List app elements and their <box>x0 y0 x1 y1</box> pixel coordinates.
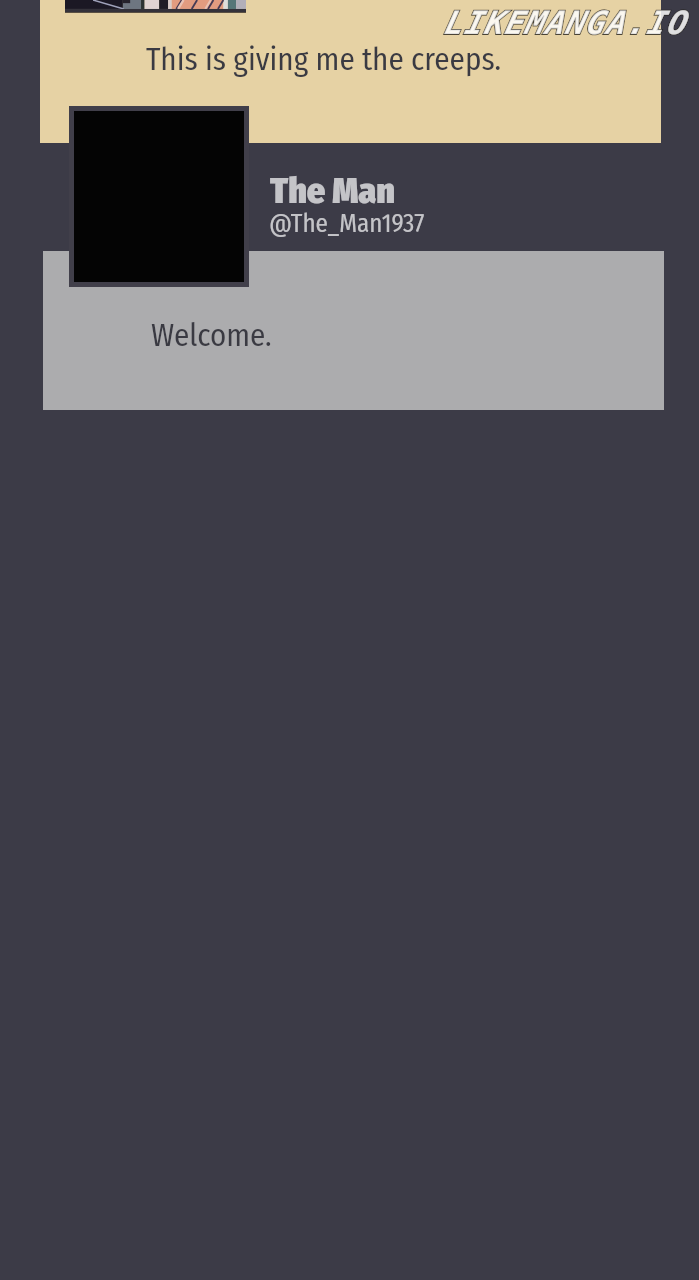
staticText: The Man <box>270 169 396 212</box>
staticText: LIKEMANGA.IO <box>443 4 687 41</box>
button[interactable]: Manga page panel <box>43 251 664 410</box>
staticText: LIKEMANGA.IO <box>443 4 687 41</box>
staticText: @The_Man1937 <box>269 209 425 239</box>
staticText: This is giving me the creeps. <box>146 41 502 78</box>
staticText: Welcome. <box>151 317 272 354</box>
button[interactable]: The Man <box>266 168 434 240</box>
button[interactable]: Manga page panel <box>40 0 661 143</box>
